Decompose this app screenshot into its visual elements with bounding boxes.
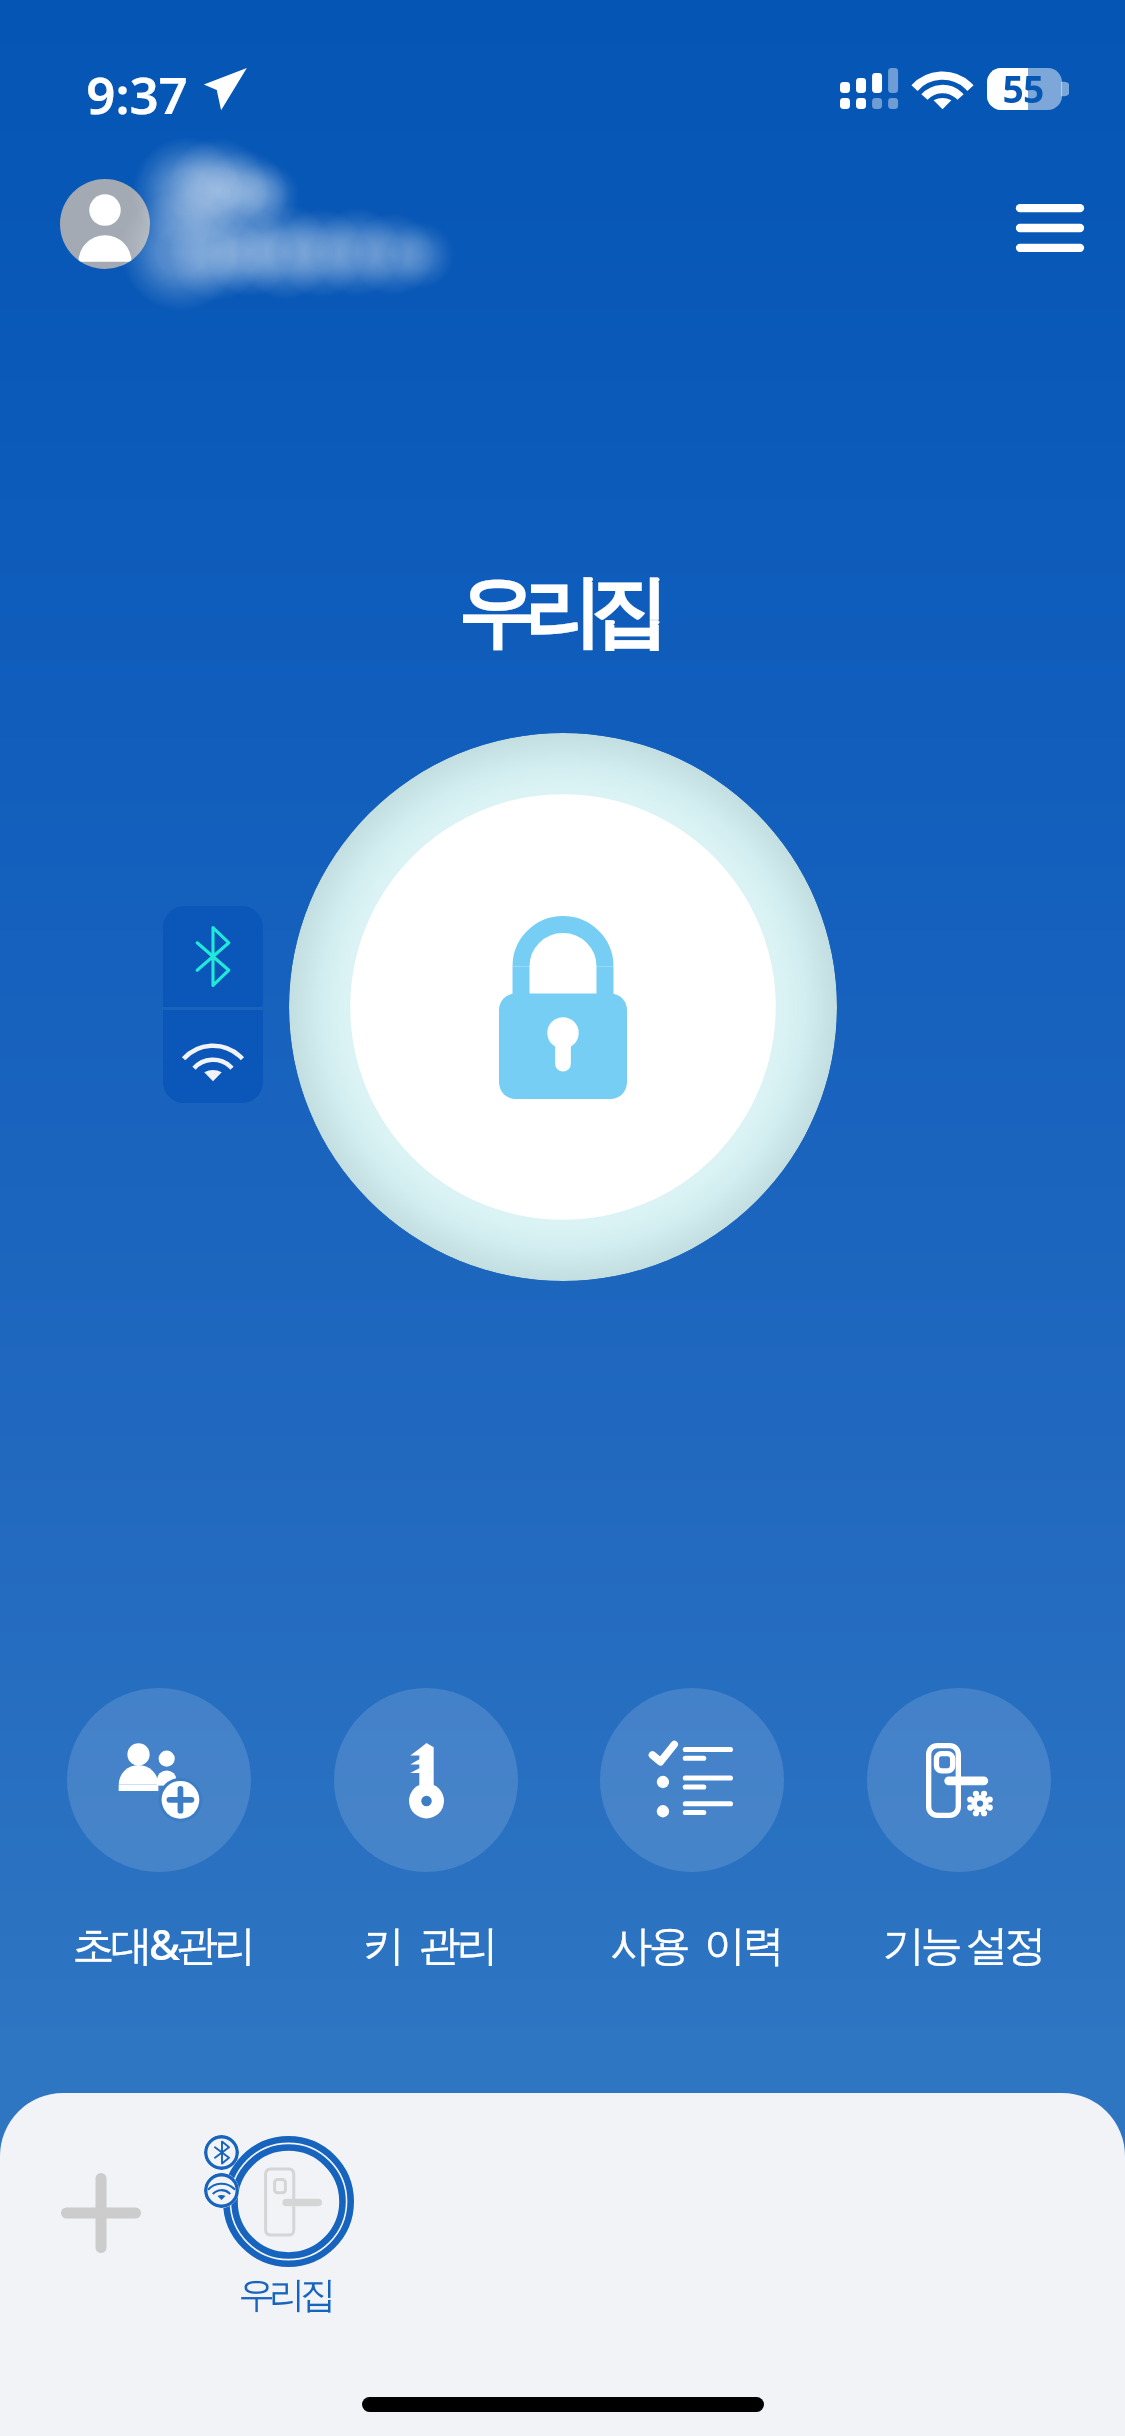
button[interactable]: Bluetooth — [163, 906, 263, 1007]
button[interactable]: Wi-Fi — [163, 1010, 263, 1103]
button[interactable]: 키 관리 — [294, 1688, 564, 1972]
staticText: 우리집 — [457, 564, 656, 662]
button[interactable]: Lock toggle — [289, 733, 837, 1281]
staticText: 우리집 — [238, 2272, 331, 2318]
button[interactable]: Add device — [41, 2153, 161, 2273]
button[interactable]: 우리집 — [186, 2105, 387, 2339]
button[interactable]: 사용 이력 — [560, 1688, 830, 1972]
staticText: 키 관리 — [363, 1915, 495, 1972]
staticText: 기능 설정 — [882, 1915, 1043, 1972]
button[interactable]: 기능 설정 — [827, 1688, 1097, 1972]
staticText: 초대&관리 — [72, 1915, 253, 1972]
button[interactable]: Profile — [60, 179, 150, 269]
staticText: 55 — [1002, 63, 1044, 105]
button[interactable]: Menu — [984, 162, 1116, 294]
button[interactable]: 초대&관리 — [27, 1688, 297, 1972]
staticText: 9:37 — [86, 59, 188, 128]
staticText: 사용 이력 — [610, 1915, 781, 1972]
